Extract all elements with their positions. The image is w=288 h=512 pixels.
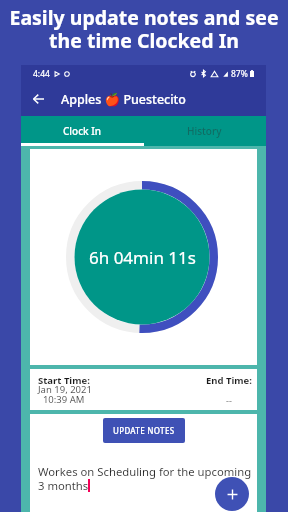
staticText: History: [187, 124, 222, 138]
staticText: Jan 19, 2021 10:39 AM: [38, 383, 92, 406]
staticText: Workes on Scheduling for the upcoming 3 …: [38, 464, 255, 493]
staticText: Clock In: [63, 124, 102, 138]
staticText: Start Time:: [38, 374, 90, 387]
staticText: --: [226, 394, 232, 406]
staticText: Apples 🍎 Puestecito: [61, 91, 186, 108]
staticText: 4:44: [33, 68, 50, 80]
staticText: UPDATE NOTES: [113, 425, 175, 436]
button[interactable]: UPDATE NOTES: [103, 418, 185, 443]
button[interactable]: Clock In: [21, 116, 143, 146]
staticText: 87%: [231, 68, 248, 80]
button[interactable]: History: [143, 116, 266, 146]
button[interactable]: Add note: [215, 477, 249, 511]
button[interactable]: Back: [21, 82, 55, 116]
staticText: End Time:: [206, 374, 252, 387]
staticText: 6h 04min 11s: [89, 246, 196, 269]
staticText: Easily update notes and see the time Clo…: [0, 4, 288, 53]
